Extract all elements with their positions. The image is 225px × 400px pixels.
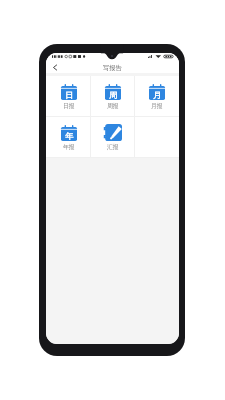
button[interactable]: 日 [46,76,91,116]
button[interactable]: 周 [91,76,135,116]
button[interactable]: Back [48,61,61,74]
button[interactable]: 汇报 [91,117,135,157]
staticText: 汇报 [107,143,119,150]
staticText: 日报 [63,102,75,109]
staticText: 年报 [63,143,75,150]
staticText: 日 [65,90,74,100]
staticText: 写报告 [103,64,122,72]
staticText: 年 [65,131,74,141]
staticText: 月报 [151,102,163,109]
staticText: 周 [109,90,118,100]
staticText: 周报 [107,102,119,109]
staticText: 月 [153,90,162,100]
button[interactable]: 月 [135,76,179,116]
button[interactable]: 年 [46,117,91,157]
